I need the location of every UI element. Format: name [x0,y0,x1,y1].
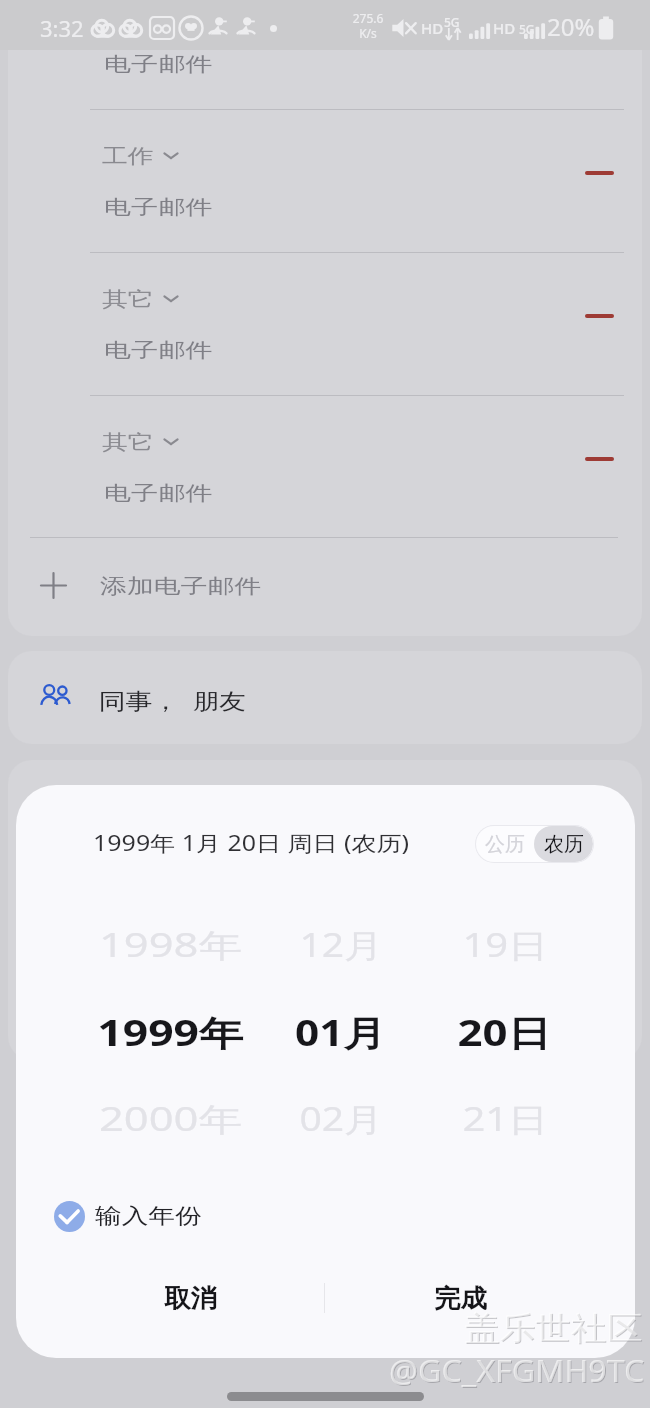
staticText: 同事， 朋友 [99,685,247,715]
button[interactable] [8,651,642,744]
staticText: 公历 [485,832,525,857]
button[interactable]: 添加电子邮件 [0,560,650,612]
staticText: HD [493,18,516,38]
staticText: 21日 [462,1097,549,1141]
staticText: 电子邮件 [104,338,213,363]
button[interactable]: 农历 [534,826,593,862]
staticText: 盖乐世社区 [464,1308,642,1348]
staticText: 完成 [434,1283,487,1314]
staticText: 电子邮件 [104,52,213,77]
button[interactable]: 其它 [101,422,197,462]
button[interactable]: 删除电子邮件 [571,437,627,481]
staticText: 其它 [102,430,154,455]
button[interactable]: 工作 [101,136,197,176]
button[interactable]: 删除电子邮件 [571,294,627,338]
staticText: 输入年份 [95,1203,202,1229]
button[interactable]: 输入年份 [46,1197,276,1237]
staticText: 添加电子邮件 [100,574,261,599]
staticText: @GC_XFGMH9TC [389,1349,645,1391]
staticText: 盖乐世社区 [465,1309,643,1349]
staticText: 5G [444,14,460,30]
staticText: 电子邮件 [104,195,213,220]
staticText: 01月 [295,1009,387,1057]
staticText: 20日 [457,1009,552,1057]
staticText: 3:32 [40,13,84,43]
staticText: 取消 [164,1283,217,1314]
staticText: 20% [547,10,595,43]
staticText: 其它 [102,287,154,312]
button[interactable]: 完成 [362,1263,556,1333]
staticText: 2000年 [99,1097,243,1141]
staticText: 19日 [462,923,549,967]
button[interactable]: 取消 [16,1263,362,1333]
staticText: 02月 [299,1097,384,1141]
staticText: 电子邮件 [104,481,213,506]
staticText: @GC_XFGMH9TC [390,1350,646,1392]
button[interactable]: 删除电子邮件 [571,151,627,195]
staticText: HD [421,18,444,38]
staticText: 5G [519,21,535,37]
staticText: 1998年 [99,923,243,967]
staticText: 工作 [102,144,154,169]
staticText: 1999年 1月 20日 周日 (农历) [93,829,409,858]
staticText: 1999年 [97,1009,245,1057]
button[interactable]: 其它 [101,279,197,319]
staticText: 12月 [299,923,384,967]
staticText: 275.6 [351,10,385,26]
staticText: 农历 [544,832,584,857]
button[interactable]: 公历 [476,826,534,862]
staticText: K/s [351,25,385,41]
